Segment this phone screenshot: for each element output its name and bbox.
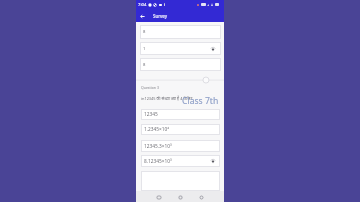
staticText: 12345.3×10³	[144, 143, 172, 150]
button[interactable]: Back	[136, 10, 148, 22]
staticText: 7:04	[138, 2, 147, 8]
staticText: in12345 की संख्या क्या है 4 डिजिट	[141, 96, 193, 101]
button[interactable]: Recent apps	[197, 192, 206, 202]
button[interactable]: 1	[140, 42, 221, 55]
staticText: Survey	[153, 13, 168, 19]
staticText: Class 7th	[182, 95, 219, 107]
button[interactable]: 12345	[141, 109, 220, 120]
staticText: 1	[143, 46, 146, 52]
button[interactable]: 8	[140, 58, 221, 71]
button[interactable]: 8.12345×10³	[141, 155, 220, 167]
button[interactable]: Back	[154, 192, 163, 202]
button[interactable]: 12345.3×10³	[141, 140, 220, 152]
staticText: Question 3	[141, 85, 159, 90]
staticText: 8	[143, 62, 146, 68]
button[interactable]: 1.2345×10⁴	[141, 124, 220, 135]
staticText: 12345	[144, 111, 158, 118]
button[interactable]	[141, 171, 220, 191]
button[interactable]: Home	[176, 192, 185, 202]
staticText: 8.12345×10³	[144, 158, 172, 165]
button[interactable]: 8	[140, 25, 221, 39]
staticText: 1.2345×10⁴	[144, 126, 169, 133]
staticText: 8	[143, 29, 146, 35]
